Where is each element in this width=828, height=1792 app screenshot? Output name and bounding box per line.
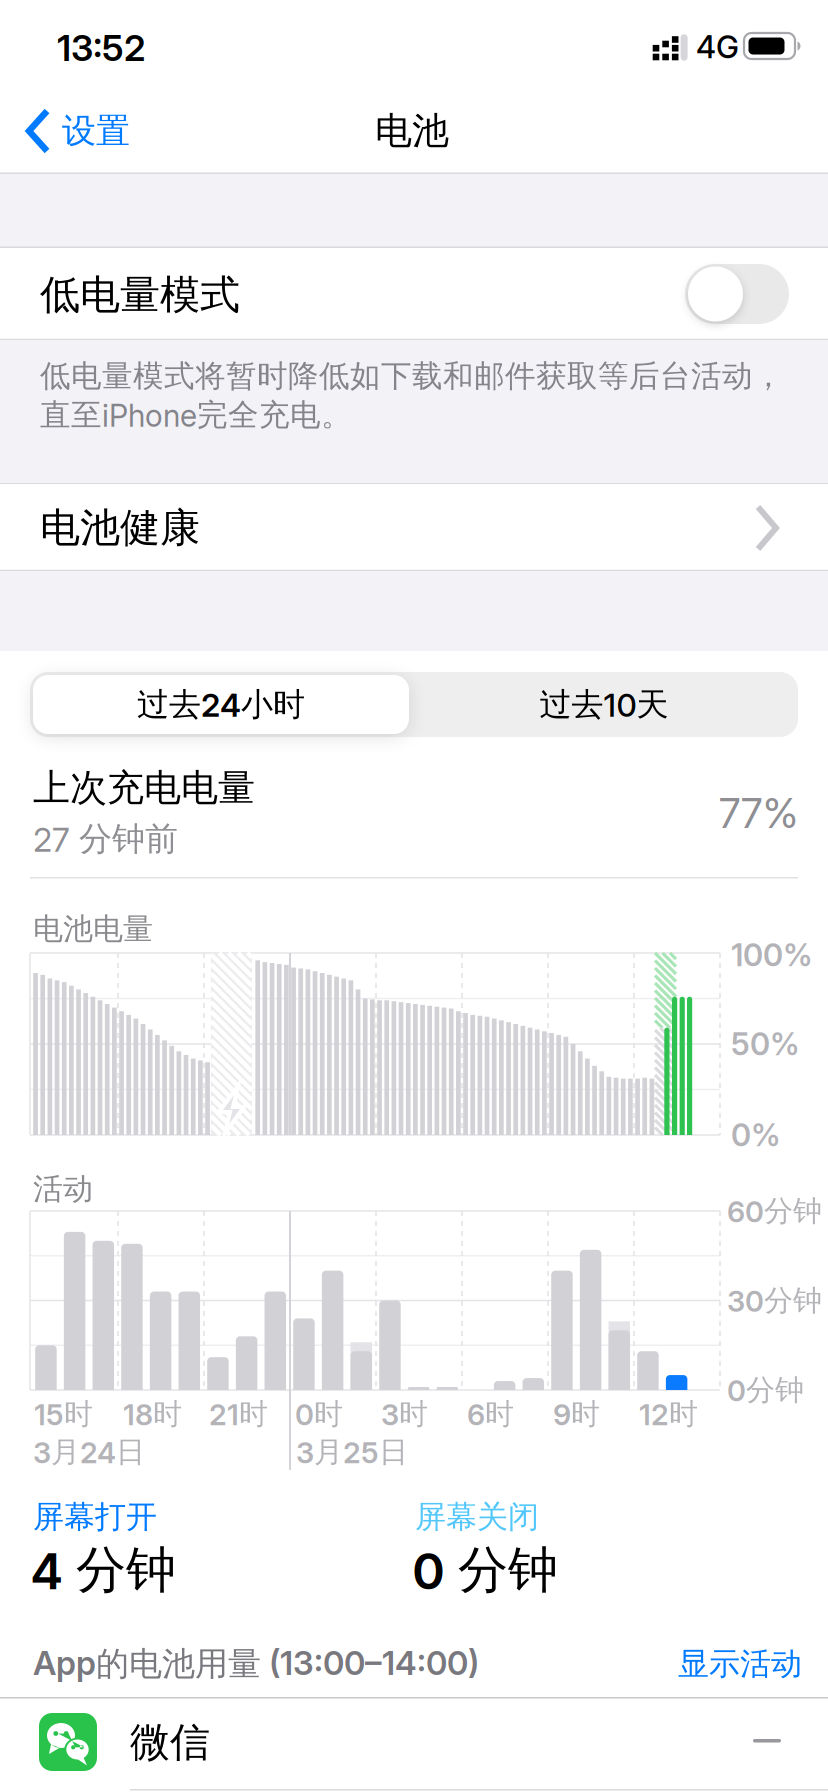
staticText: 3时 [381,1396,428,1432]
staticText: 13:52 [57,26,145,70]
staticText: 0% [731,1116,781,1154]
staticText: 60分钟 [727,1193,822,1229]
staticText: 直至iPhone完全充电。 [40,396,352,434]
button[interactable]: 显示活动 [678,1644,802,1684]
button[interactable] [685,264,789,324]
staticText: 屏幕打开 [33,1497,157,1537]
staticText: 0时 [295,1396,343,1432]
staticText: 4 分钟 [30,1538,176,1601]
staticText: 过去24小时 [137,684,305,725]
staticText: 15时 [34,1396,93,1432]
staticText: 6时 [467,1396,514,1432]
staticText: 21时 [209,1396,268,1432]
staticText: 屏幕关闭 [415,1497,539,1537]
staticText: 设置 [62,110,130,152]
staticText: 0分钟 [727,1372,804,1408]
staticText: 12时 [639,1396,698,1432]
staticText: 3月25日 [296,1434,408,1470]
staticText: 4G [696,28,739,66]
staticText: 活动 [33,1170,93,1208]
staticText: 电池健康 [40,503,200,553]
staticText: 30分钟 [727,1282,822,1319]
staticText: 9时 [553,1396,600,1432]
staticText: 低电量模式 [40,270,240,320]
staticText: 过去10天 [539,684,668,725]
staticText: 50% [731,1025,800,1063]
staticText: 微信 [130,1717,210,1768]
staticText: 3月24日 [33,1434,145,1470]
staticText: 18时 [123,1396,182,1432]
staticText: 上次充电电量 [33,765,255,811]
staticText: 27 分钟前 [33,818,178,860]
staticText: App的电池用量 (13:00–14:00) [33,1643,479,1685]
button[interactable]: 设置 [26,109,130,153]
staticText: 0 分钟 [412,1538,558,1601]
button[interactable]: 过去24小时 [33,675,409,734]
button[interactable]: 微信 [0,1699,828,1792]
staticText: 电池 [375,108,449,154]
staticText: 低电量模式将暂时降低如下载和邮件获取等后台活动， [40,357,784,395]
staticText: 电池电量 [33,910,153,948]
button[interactable]: 电池健康 [0,484,828,569]
staticText: 77% [719,788,798,838]
staticText: 显示活动 [678,1644,802,1684]
staticText: 100% [731,936,813,974]
button[interactable]: 过去10天 [414,675,794,734]
